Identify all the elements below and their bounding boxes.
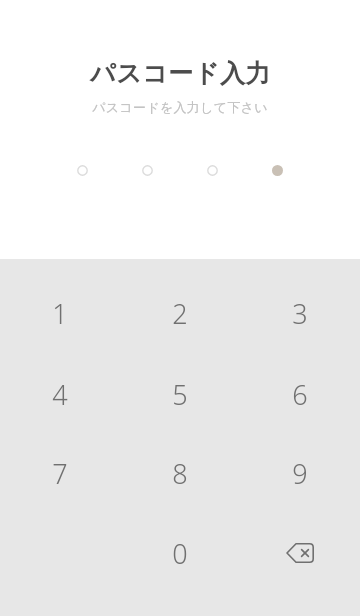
button[interactable]: 3 [240, 283, 360, 343]
staticText: 0 [172, 535, 188, 572]
button[interactable]: Delete [240, 523, 360, 583]
staticText: 7 [52, 455, 68, 492]
staticText: 1 [52, 295, 68, 332]
staticText: パスコード入力 [90, 58, 271, 89]
button[interactable]: 7 [0, 443, 120, 503]
button[interactable]: 5 [120, 364, 240, 424]
staticText: 3 [292, 295, 308, 332]
staticText: 4 [52, 376, 68, 413]
staticText: 2 [172, 295, 188, 332]
staticText: 6 [292, 376, 308, 413]
staticText: パスコードを入力して下さい [92, 99, 268, 115]
button[interactable]: 1 [0, 283, 120, 343]
button[interactable]: 2 [120, 283, 240, 343]
staticText: 8 [172, 455, 188, 492]
button[interactable]: 4 [0, 364, 120, 424]
staticText: 5 [172, 376, 188, 413]
staticText: 9 [292, 455, 308, 492]
button[interactable]: 8 [120, 443, 240, 503]
button[interactable]: 0 [120, 523, 240, 583]
button[interactable]: 6 [240, 364, 360, 424]
button[interactable]: 9 [240, 443, 360, 503]
